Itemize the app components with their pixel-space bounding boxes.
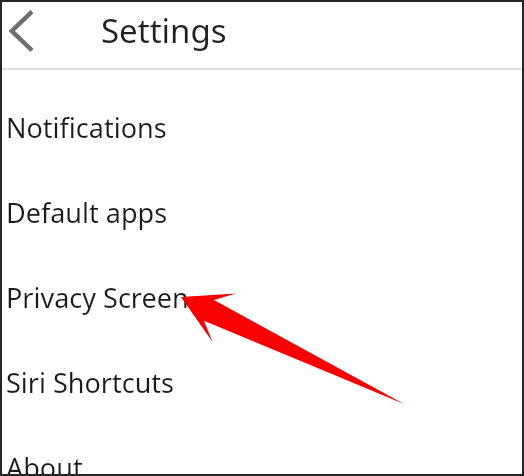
button[interactable]: Privacy Screen <box>0 255 524 340</box>
button[interactable]: Default apps <box>0 170 524 255</box>
staticText: Default apps <box>6 194 168 231</box>
button[interactable]: Siri Shortcuts <box>0 340 524 425</box>
staticText: Siri Shortcuts <box>6 364 174 401</box>
staticText: Notifications <box>6 109 167 146</box>
staticText: Privacy Screen <box>6 279 189 316</box>
button[interactable]: Notifications <box>0 85 524 170</box>
button[interactable]: About <box>0 425 524 476</box>
button[interactable]: Back <box>0 0 46 62</box>
staticText: Settings <box>101 8 227 53</box>
staticText: About <box>6 449 83 476</box>
